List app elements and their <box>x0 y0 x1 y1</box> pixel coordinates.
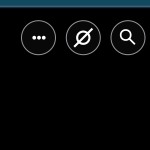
button[interactable]: More <box>21 21 55 55</box>
button[interactable]: Search <box>111 21 145 55</box>
button[interactable]: Hide <box>66 21 100 55</box>
